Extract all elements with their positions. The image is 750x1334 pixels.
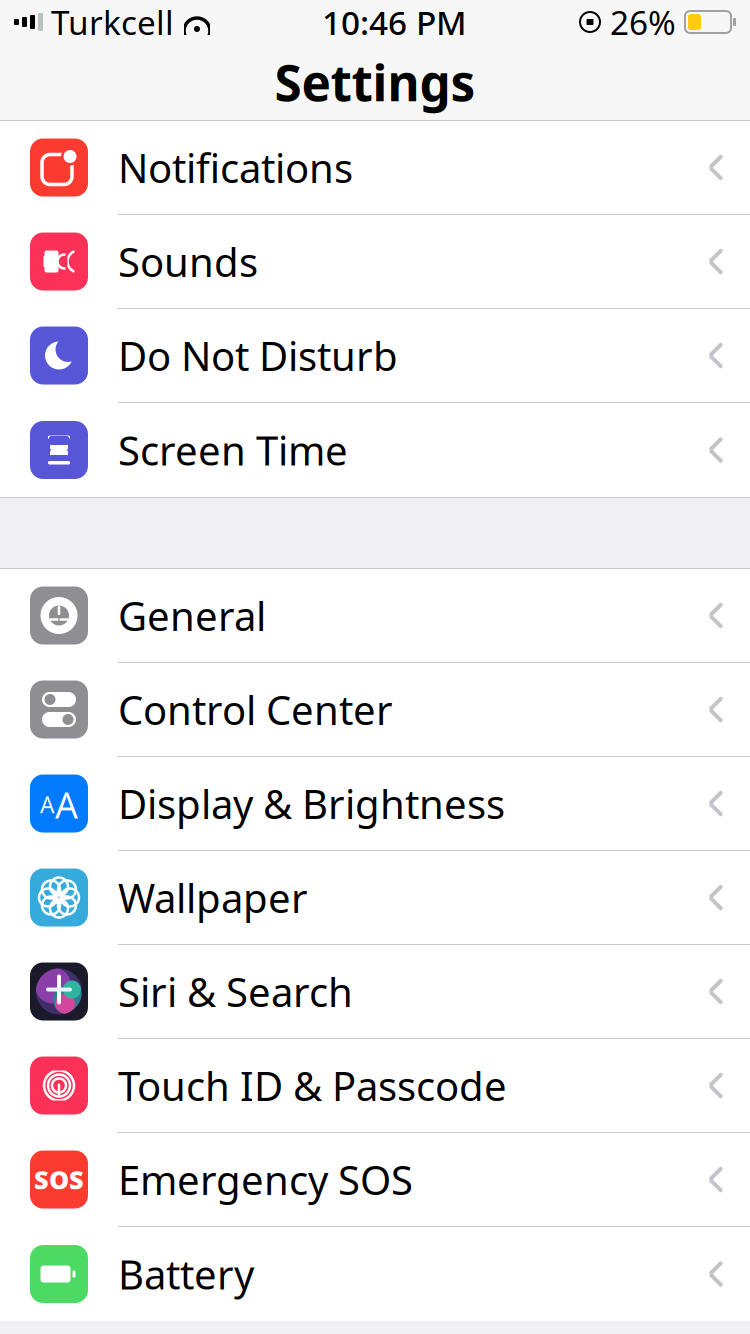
staticText: Turkcell xyxy=(51,0,174,44)
button[interactable]: Notifications xyxy=(0,121,750,215)
staticText: General xyxy=(118,589,266,642)
staticText: SOS xyxy=(34,1163,84,1196)
staticText: Touch ID & Passcode xyxy=(118,1059,507,1112)
staticText: Screen Time xyxy=(118,423,348,476)
button[interactable]: Control Center xyxy=(0,663,750,757)
staticText: Battery xyxy=(118,1247,254,1300)
button[interactable]: General xyxy=(0,569,750,663)
staticText: Emergency SOS xyxy=(118,1153,413,1206)
button[interactable]: SOS xyxy=(0,1133,750,1227)
staticText: 26% xyxy=(610,0,676,44)
button[interactable]: Screen Time xyxy=(0,403,750,497)
staticText: Wallpaper xyxy=(118,871,308,924)
staticText: 10:46 PM xyxy=(322,0,467,44)
staticText: Do Not Disturb xyxy=(118,329,398,382)
staticText: Control Center xyxy=(118,683,393,736)
staticText: Sounds xyxy=(118,235,258,288)
button[interactable]: Battery xyxy=(0,1227,750,1321)
button[interactable]: Touch ID & Passcode xyxy=(0,1039,750,1133)
staticText: Display & Brightness xyxy=(118,777,505,830)
staticText: Notifications xyxy=(118,141,353,194)
button[interactable]: Do Not Disturb xyxy=(0,309,750,403)
button[interactable]: Sounds xyxy=(0,215,750,309)
button[interactable]: A xyxy=(0,757,750,851)
staticText: A xyxy=(55,781,78,828)
button[interactable]: Wallpaper xyxy=(0,851,750,945)
staticText: Siri & Search xyxy=(118,965,353,1018)
staticText: Settings xyxy=(274,49,475,115)
button[interactable]: Siri & Search xyxy=(0,945,750,1039)
staticText: A xyxy=(40,789,54,819)
